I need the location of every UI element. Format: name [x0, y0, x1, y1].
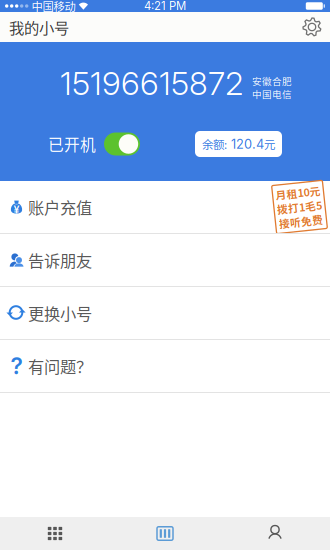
button[interactable]: Apps [0, 517, 110, 550]
staticText: 账户充值 [28, 195, 92, 219]
button[interactable]: ¥ [0, 181, 330, 233]
staticText: 余额: [202, 136, 227, 152]
staticText: 告诉朋友 [28, 248, 92, 272]
staticText: 接听免费 [277, 214, 321, 229]
staticText: 我的小号 [9, 16, 69, 38]
button[interactable]: ? [0, 340, 330, 392]
staticText: 中国电信 [252, 87, 292, 101]
staticText: 安徽合肥 [252, 74, 292, 88]
staticText: 中国移动 [31, 0, 75, 14]
staticText: ? [10, 352, 22, 380]
staticText: 月租10元 [277, 185, 322, 200]
button[interactable]: My Number [110, 517, 220, 550]
staticText: 120.4 [227, 136, 264, 152]
staticText: 4:21 PM [144, 0, 186, 13]
button[interactable]: 更换小号 [0, 287, 330, 339]
staticText: 已开机 [48, 133, 96, 155]
staticText: 有问题？ [28, 354, 92, 378]
button[interactable]: 告诉朋友 [0, 234, 330, 286]
button[interactable]: Profile [220, 517, 330, 550]
button[interactable]: Settings [294, 12, 330, 42]
staticText: 元 [264, 136, 275, 152]
staticText: 更换小号 [28, 301, 92, 325]
staticText: 15196615872 [60, 64, 244, 103]
staticText: 拨打1毛5 [277, 199, 322, 215]
staticText: ¥ [13, 203, 19, 216]
